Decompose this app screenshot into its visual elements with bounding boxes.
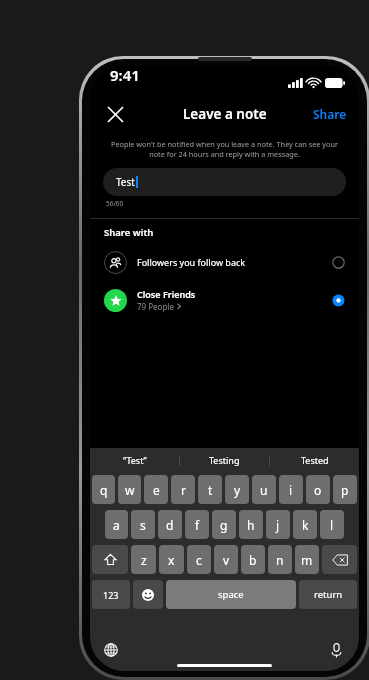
- button[interactable]: Test: [103, 168, 346, 196]
- button[interactable]: z: [131, 545, 156, 574]
- button[interactable]: b: [241, 545, 265, 574]
- staticText: q: [100, 482, 108, 498]
- button[interactable]: m: [295, 545, 319, 574]
- button[interactable]: k: [293, 510, 317, 539]
- button[interactable]: l: [320, 510, 344, 539]
- button[interactable]: Followers you follow back: [90, 245, 359, 279]
- staticText: y: [234, 482, 241, 498]
- button[interactable]: y: [225, 475, 249, 504]
- staticText: d: [166, 517, 174, 533]
- button[interactable]: space: [166, 580, 296, 609]
- button[interactable]: v: [214, 545, 238, 574]
- staticText: Followers you follow back: [137, 256, 246, 268]
- staticText: 9:41: [110, 65, 140, 85]
- staticText: e: [153, 482, 160, 498]
- button[interactable]: f: [185, 510, 209, 539]
- staticText: Share with: [104, 226, 154, 239]
- staticText: Testing: [209, 454, 240, 466]
- button[interactable]: c: [187, 545, 211, 574]
- staticText: w: [125, 482, 135, 498]
- button[interactable]: 123: [92, 580, 130, 609]
- button[interactable]: a: [105, 510, 128, 539]
- button[interactable]: Shift: [92, 545, 128, 574]
- button[interactable]: “Test”: [90, 448, 179, 472]
- staticText: o: [314, 482, 322, 498]
- button[interactable]: p: [333, 475, 357, 504]
- button[interactable]: Testing: [180, 448, 269, 472]
- button[interactable]: Emoji: [133, 580, 163, 609]
- staticText: m: [301, 552, 313, 568]
- button[interactable]: Share: [310, 101, 350, 127]
- staticText: 123: [103, 589, 119, 601]
- staticText: 56/60: [106, 199, 124, 208]
- staticText: People won't be notified when you leave …: [110, 139, 339, 159]
- button[interactable]: t: [198, 475, 222, 504]
- staticText: z: [141, 552, 147, 568]
- button[interactable]: o: [306, 475, 330, 504]
- staticText: p: [341, 482, 349, 498]
- staticText: c: [196, 552, 202, 568]
- staticText: Test: [116, 175, 135, 189]
- button[interactable]: n: [268, 545, 292, 574]
- staticText: f: [195, 517, 200, 533]
- staticText: a: [113, 517, 120, 533]
- button[interactable]: Change keyboard language: [98, 637, 124, 663]
- staticText: r: [181, 482, 186, 498]
- staticText: t: [208, 482, 213, 498]
- staticText: “Test”: [123, 454, 147, 466]
- staticText: Close Friends: [137, 288, 196, 300]
- staticText: j: [276, 517, 280, 533]
- button[interactable]: Backspace: [322, 545, 357, 574]
- staticText: s: [140, 517, 146, 533]
- staticText: b: [249, 552, 257, 568]
- button[interactable]: r: [171, 475, 195, 504]
- button[interactable]: i: [279, 475, 303, 504]
- staticText: u: [260, 482, 268, 498]
- button[interactable]: g: [212, 510, 236, 539]
- button[interactable]: d: [158, 510, 182, 539]
- staticText: return: [314, 588, 343, 601]
- button[interactable]: q: [92, 475, 115, 504]
- button[interactable]: w: [118, 475, 141, 504]
- button[interactable]: return: [299, 580, 357, 609]
- staticText: x: [168, 552, 175, 568]
- staticText: 79 People: [137, 301, 174, 312]
- button[interactable]: Tested: [270, 448, 359, 472]
- button[interactable]: x: [159, 545, 184, 574]
- staticText: i: [289, 482, 293, 498]
- button[interactable]: Dictation: [323, 637, 349, 663]
- staticText: l: [330, 517, 334, 533]
- staticText: v: [223, 552, 230, 568]
- staticText: k: [302, 517, 309, 533]
- button[interactable]: Close: [98, 97, 132, 131]
- button[interactable]: h: [239, 510, 263, 539]
- button[interactable]: Close Friends: [90, 283, 359, 317]
- button[interactable]: s: [131, 510, 155, 539]
- staticText: Share: [313, 106, 347, 122]
- button[interactable]: j: [266, 510, 290, 539]
- staticText: g: [220, 517, 228, 533]
- staticText: h: [247, 517, 255, 533]
- staticText: space: [218, 588, 244, 601]
- button[interactable]: u: [252, 475, 276, 504]
- button[interactable]: e: [144, 475, 168, 504]
- staticText: Tested: [301, 454, 329, 466]
- staticText: n: [276, 552, 284, 568]
- staticText: Leave a note: [183, 105, 267, 123]
